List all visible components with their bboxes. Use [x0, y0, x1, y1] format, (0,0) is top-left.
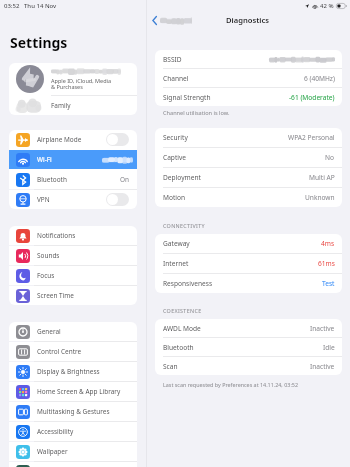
- button[interactable]: VPN: [9, 190, 137, 209]
- staticText: 42 %: [320, 2, 334, 10]
- button[interactable]: Notifications: [9, 226, 137, 245]
- button[interactable]: Display & Brightness: [9, 362, 137, 381]
- button[interactable]: Home Screen & App Library: [9, 382, 137, 401]
- button[interactable]: Multitasking & Gestures: [9, 402, 137, 421]
- staticText: Channel: [163, 74, 304, 83]
- other: Back: [152, 16, 157, 25]
- staticText: -61 (Moderate): [289, 93, 335, 102]
- staticText: Accessibility: [37, 427, 74, 436]
- staticText: Control Centre: [37, 347, 82, 356]
- staticText: VPN: [37, 195, 50, 204]
- staticText: Apple ID, iCloud, Media & Purchases: [51, 77, 112, 91]
- staticText: Inactive: [310, 324, 335, 333]
- staticText: General: [37, 327, 61, 336]
- button[interactable]: Captive: [155, 148, 342, 167]
- button[interactable]: Bluetooth: [155, 338, 342, 356]
- button[interactable]: Accessibility: [9, 422, 137, 441]
- staticText: Focus: [37, 271, 55, 280]
- button[interactable]: Internet: [155, 254, 342, 273]
- staticText: Captive: [163, 153, 325, 162]
- staticText: Unknown: [305, 193, 335, 202]
- staticText: Gateway: [163, 239, 321, 248]
- staticText: Deployment: [163, 173, 309, 182]
- button[interactable]: Control Centre: [9, 342, 137, 361]
- button[interactable]: Gateway: [155, 234, 342, 253]
- staticText: No: [325, 153, 335, 162]
- staticText: BSSID: [163, 55, 269, 64]
- button[interactable]: Airplane Mode: [9, 130, 137, 149]
- button[interactable]: Sounds: [9, 246, 137, 265]
- button[interactable]: Wallpaper: [9, 442, 137, 461]
- button[interactable]: Bluetooth: [9, 170, 137, 189]
- staticText: Internet: [163, 259, 318, 268]
- staticText: Responsiveness: [163, 279, 322, 288]
- staticText: Wallpaper: [37, 447, 68, 456]
- button[interactable]: AWDL Mode: [155, 319, 342, 337]
- button[interactable]: Toggle: [106, 133, 129, 146]
- button[interactable]: Motion: [155, 188, 342, 207]
- staticText: Bluetooth: [37, 175, 67, 184]
- button[interactable]: Siri & Search: [9, 462, 137, 467]
- staticText: COEXISTENCE: [163, 307, 202, 314]
- staticText: Family: [51, 101, 71, 110]
- staticText: Display & Brightness: [37, 367, 100, 376]
- staticText: 4ms: [321, 239, 335, 248]
- button[interactable]: Family: [9, 96, 137, 115]
- staticText: Sounds: [37, 251, 60, 260]
- button[interactable]: Wi-Fi: [9, 150, 137, 169]
- staticText: Scan: [163, 362, 310, 371]
- staticText: Security: [163, 133, 288, 142]
- staticText: Screen Time: [37, 291, 74, 300]
- staticText: Channel utilisation is low.: [163, 109, 230, 117]
- button[interactable]: Apple ID, iCloud, Media & Purchases: [9, 63, 137, 95]
- button[interactable]: Responsiveness: [155, 274, 342, 293]
- staticText: Motion: [163, 193, 305, 202]
- staticText: Bluetooth: [163, 343, 323, 352]
- button[interactable]: Signal Strength: [155, 88, 342, 106]
- staticText: 03:52: [4, 2, 20, 10]
- button[interactable]: General: [9, 322, 137, 341]
- staticText: Inactive: [310, 362, 335, 371]
- staticText: Multi AP: [309, 173, 335, 182]
- staticText: On: [120, 175, 130, 184]
- button[interactable]: Screen Time: [9, 286, 137, 305]
- staticText: Notifications: [37, 231, 76, 240]
- staticText: Airplane Mode: [37, 135, 82, 144]
- staticText: Multitasking & Gestures: [37, 407, 110, 416]
- staticText: Test: [322, 279, 335, 288]
- button[interactable]: Security: [155, 128, 342, 147]
- button[interactable]: Deployment: [155, 168, 342, 187]
- staticText: 61ms: [318, 259, 335, 268]
- staticText: 6 (40MHz): [304, 74, 335, 83]
- button[interactable]: Channel: [155, 69, 342, 87]
- staticText: Last scan requested by Preferences at 14…: [163, 381, 298, 388]
- staticText: Home Screen & App Library: [37, 387, 121, 396]
- staticText: Settings: [10, 33, 68, 52]
- staticText: WPA2 Personal: [288, 133, 335, 142]
- button[interactable]: Focus: [9, 266, 137, 285]
- staticText: Signal Strength: [163, 93, 289, 102]
- staticText: AWDL Mode: [163, 324, 310, 333]
- button[interactable]: BSSID: [155, 50, 342, 68]
- button[interactable]: Back: [150, 14, 194, 27]
- staticText: Idle: [323, 343, 335, 352]
- staticText: Thu 14 Nov: [24, 2, 57, 10]
- button[interactable]: Toggle: [106, 193, 129, 206]
- staticText: CONNECTIVITY: [163, 222, 205, 229]
- staticText: Diagnostics: [226, 15, 269, 25]
- button[interactable]: Scan: [155, 357, 342, 375]
- staticText: Wi-Fi: [37, 155, 52, 164]
